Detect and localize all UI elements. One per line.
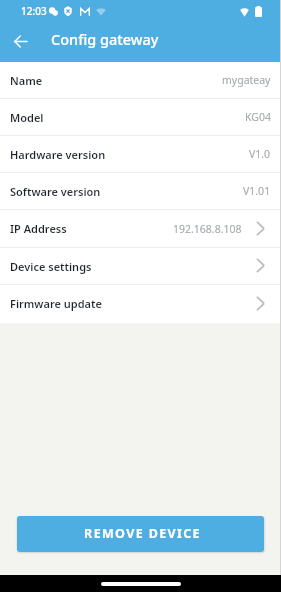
button[interactable]: Firmware update [0, 285, 281, 322]
staticText: Hardware version [10, 147, 106, 162]
staticText: Firmware update [10, 296, 102, 311]
button[interactable]: Device settings [0, 248, 281, 284]
staticText: 192.168.8.108 [173, 222, 242, 236]
staticText: REMOVE DEVICE [84, 525, 201, 542]
staticText: Name [10, 73, 43, 88]
button[interactable]: REMOVE DEVICE [17, 516, 264, 552]
button[interactable]: Name [0, 62, 281, 98]
staticText: mygateay [222, 73, 271, 87]
button[interactable]: Hardware version [0, 136, 281, 172]
staticText: IP Address [10, 221, 67, 236]
button[interactable]: Back [7, 28, 34, 55]
staticText: Model [10, 110, 44, 125]
staticText: 12:03 [21, 4, 47, 18]
button[interactable]: IP Address [0, 210, 281, 247]
staticText: KG04 [245, 110, 271, 124]
staticText: V1.01 [243, 184, 271, 198]
staticText: V1.0 [249, 147, 271, 161]
staticText: Software version [10, 184, 101, 199]
button[interactable]: Model [0, 99, 281, 135]
staticText: Device settings [10, 259, 92, 274]
button[interactable]: Software version [0, 173, 281, 209]
staticText: Config gateway [51, 29, 159, 49]
